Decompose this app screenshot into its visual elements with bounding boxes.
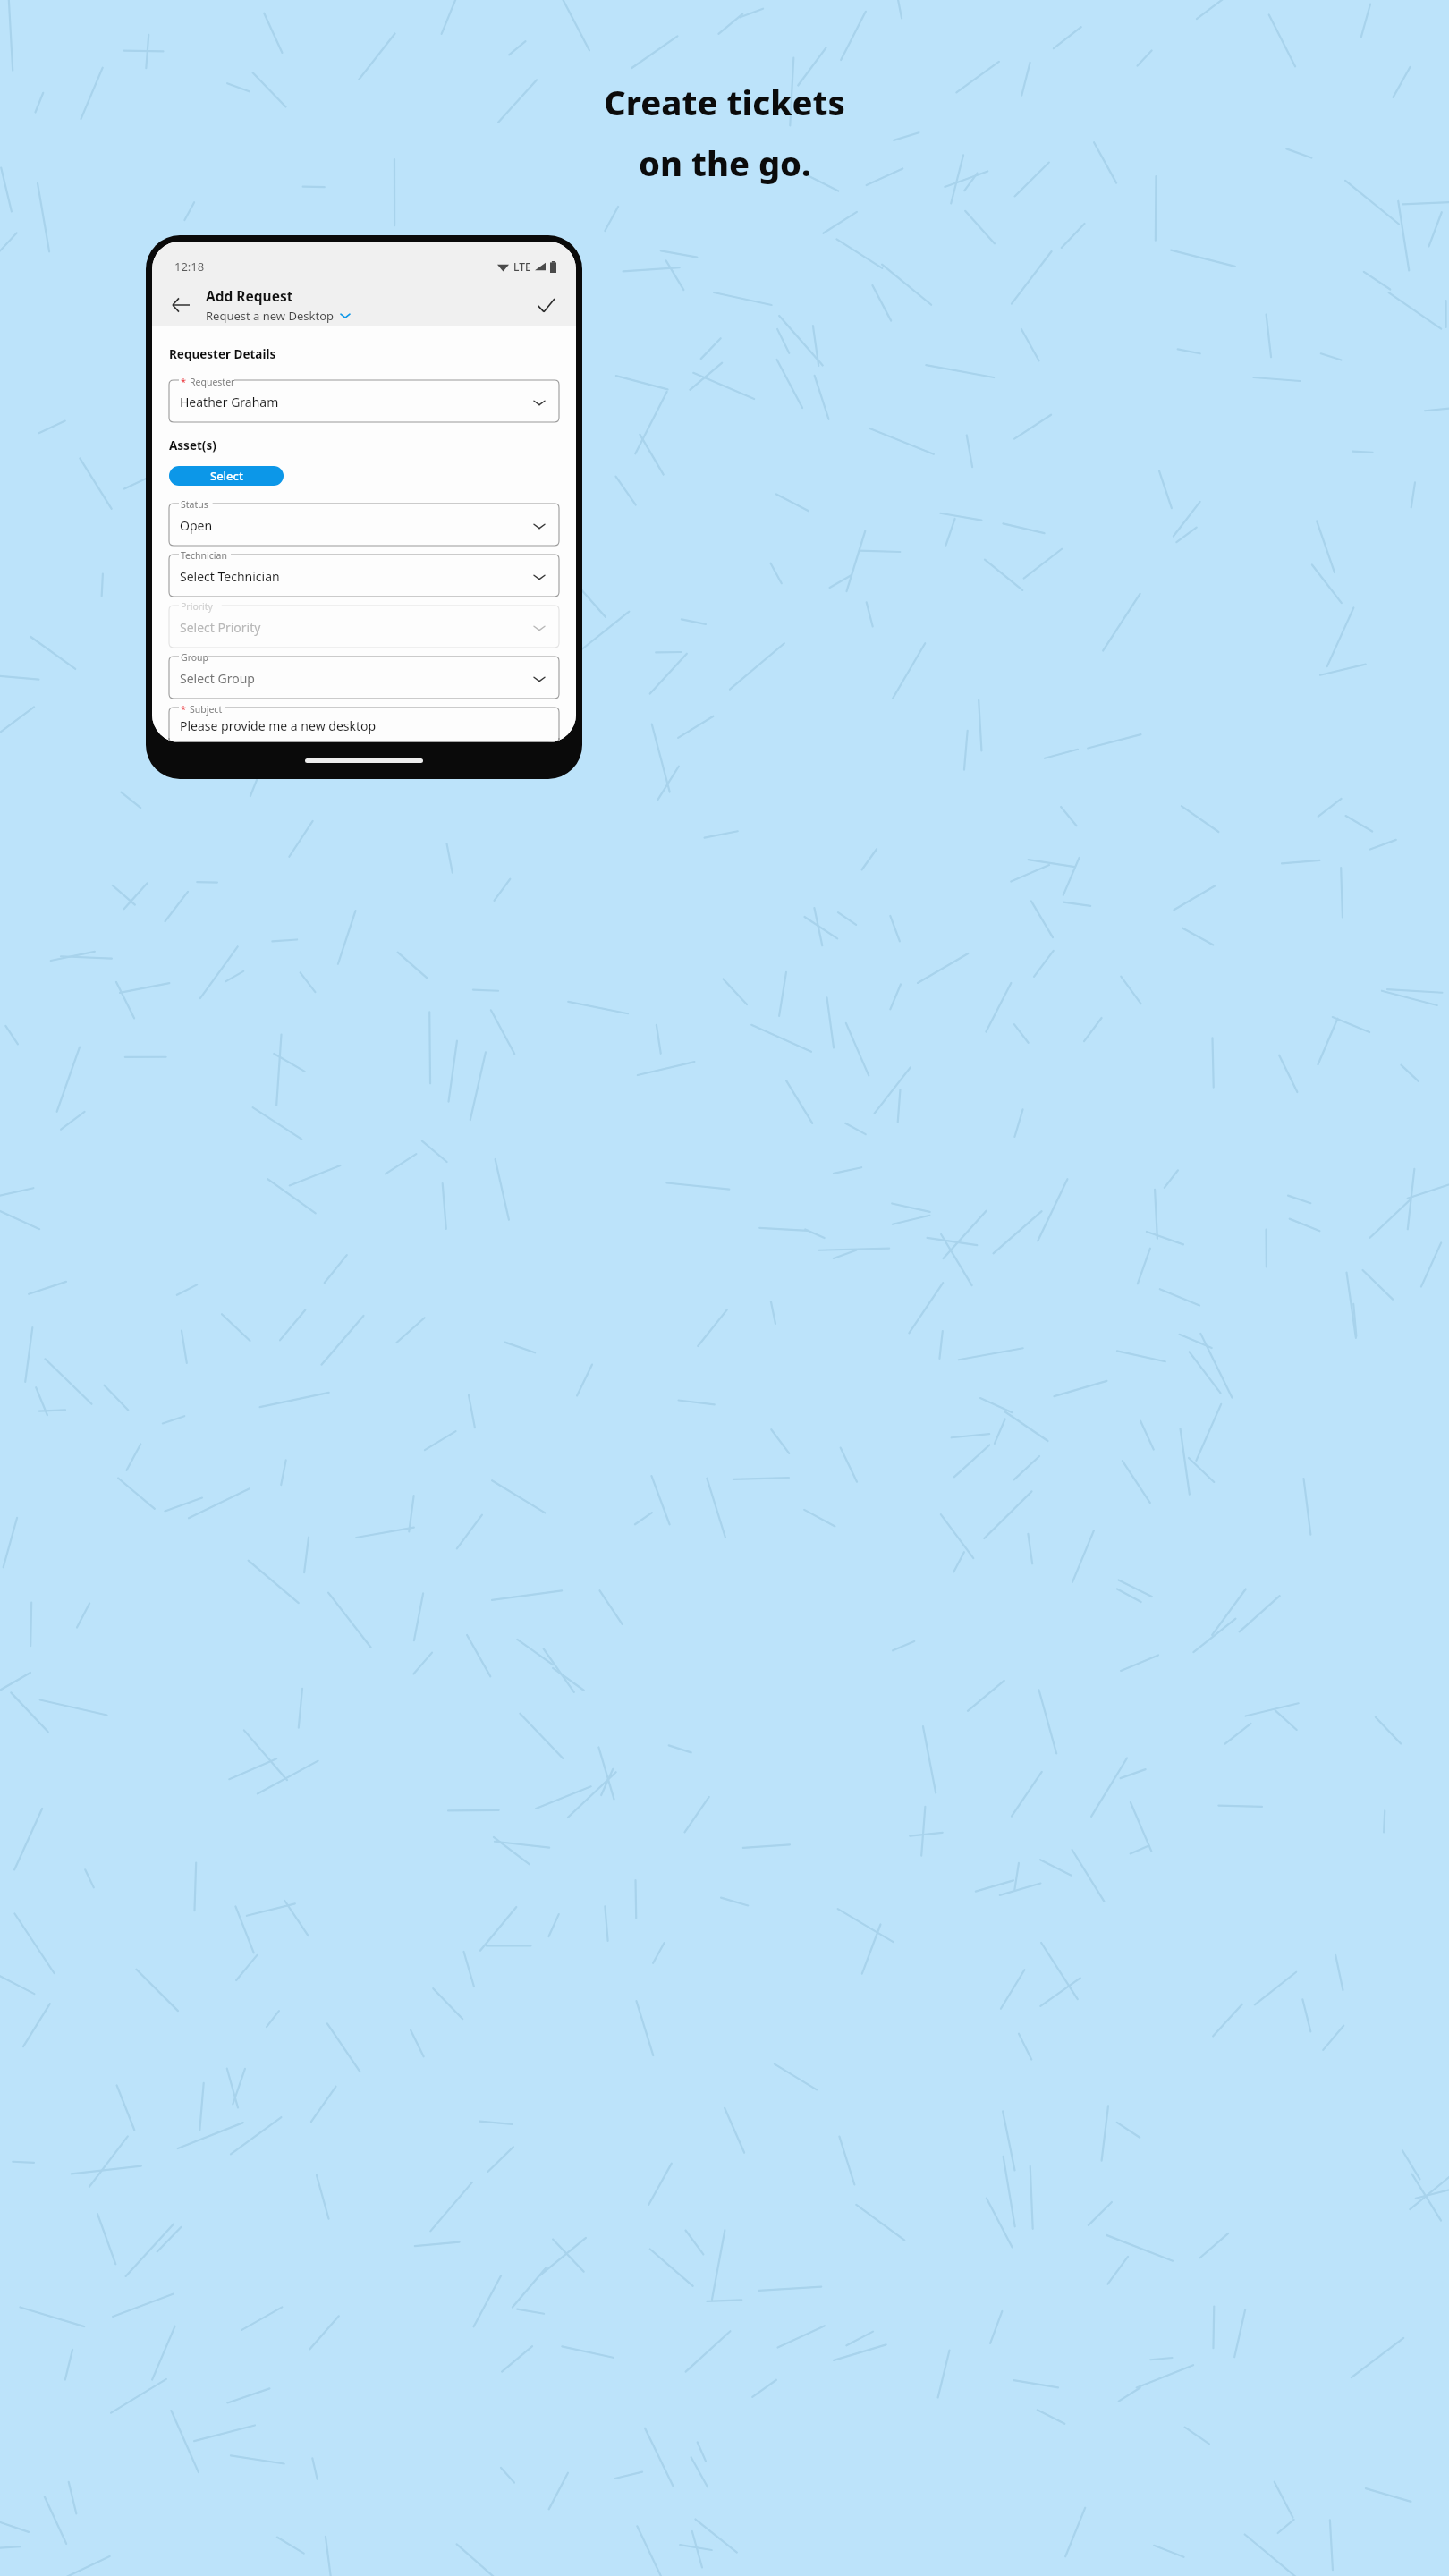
button[interactable]: Request a new Desktop (206, 308, 350, 324)
staticText: Select Technician (180, 568, 280, 585)
staticText: Select Priority (180, 619, 261, 636)
button[interactable]: * (169, 708, 559, 742)
button[interactable]: Back (163, 287, 199, 323)
button[interactable]: Status (169, 504, 559, 546)
button[interactable]: Save (528, 287, 563, 323)
button[interactable]: Group (169, 657, 559, 699)
staticText: Subject (190, 703, 223, 716)
staticText: Technician (181, 549, 227, 562)
staticText: Group (181, 651, 209, 664)
staticText: Create tickets (604, 79, 845, 125)
button[interactable]: Select (169, 466, 284, 486)
staticText: Requester (190, 376, 235, 388)
staticText: Please provide me a new desktop (180, 717, 377, 734)
staticText: Heather Graham (180, 394, 279, 411)
staticText: Select (210, 468, 243, 484)
staticText: * (181, 702, 187, 716)
staticText: Priority (181, 600, 213, 613)
button[interactable]: Technician (169, 555, 559, 597)
staticText: Open (180, 517, 213, 534)
staticText: LTE (513, 259, 531, 274)
staticText: Add Request (206, 286, 293, 305)
staticText: Asset(s) (169, 437, 216, 453)
staticText: Select Group (180, 670, 255, 687)
staticText: on the go. (639, 140, 811, 186)
button[interactable]: Priority (169, 606, 559, 648)
staticText: Status (181, 498, 208, 511)
staticText: * (181, 375, 187, 388)
staticText: Requester Details (169, 346, 276, 362)
staticText: Request a new Desktop (206, 308, 335, 324)
staticText: 12:18 (174, 258, 205, 275)
button[interactable]: * (169, 380, 559, 422)
